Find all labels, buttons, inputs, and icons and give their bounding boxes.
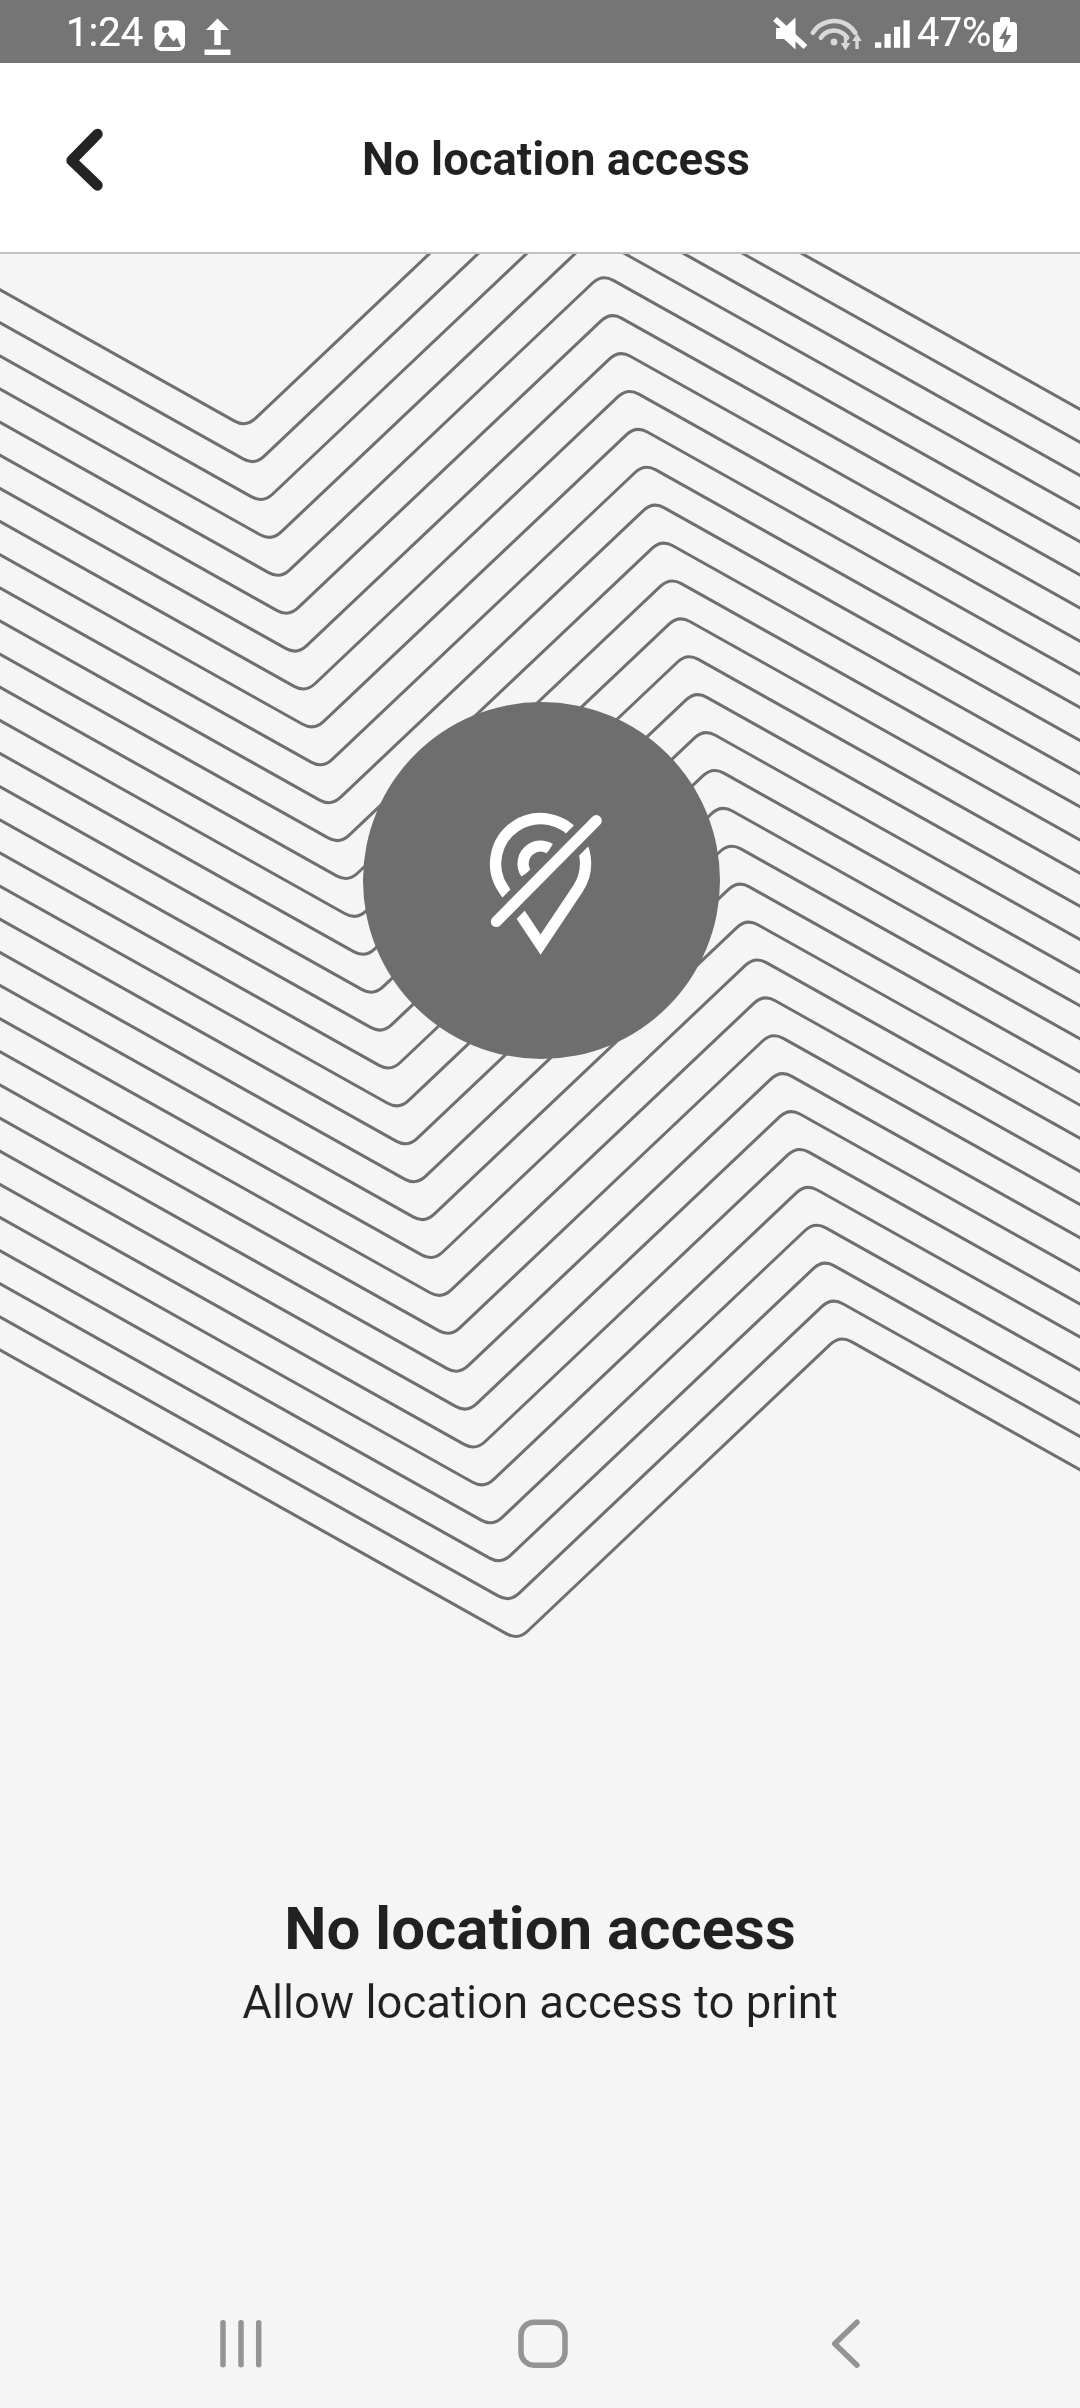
staticText: 1:24 (66, 9, 144, 56)
button[interactable]: Back (24, 89, 144, 209)
staticText: Allow location access to print (242, 1976, 838, 2029)
staticText: No location access (284, 1893, 796, 1963)
button[interactable]: Recent apps (160, 2264, 320, 2408)
staticText: 47% (917, 9, 992, 56)
button[interactable]: Home (463, 2264, 623, 2408)
staticText: No location access (362, 133, 750, 186)
button[interactable]: Back (765, 2264, 925, 2408)
